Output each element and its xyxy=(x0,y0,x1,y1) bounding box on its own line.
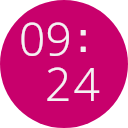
button[interactable]: Watch face, 09:24 xyxy=(0,0,128,128)
staticText: 09 xyxy=(19,7,73,70)
staticText: 24 xyxy=(45,52,103,115)
